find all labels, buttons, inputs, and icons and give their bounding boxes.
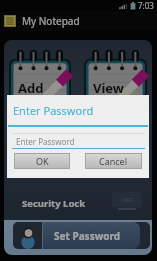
staticText: OK [36,155,49,167]
button[interactable]: View [84,46,147,104]
staticText: Enter Password [16,136,75,147]
button[interactable]: Account [13,222,42,249]
button[interactable]: Set Password [43,222,140,249]
staticText: 7:03 [138,0,154,11]
staticText: View [93,79,124,97]
staticText: My Notepad [22,14,80,28]
button[interactable]: Security lock toggle, off [112,192,142,210]
staticText: Cancel [99,155,128,167]
staticText: Enter Password [13,103,94,118]
staticText: Security Lock [22,197,86,210]
staticText: Add [18,79,44,97]
button[interactable]: Cancel [86,154,141,168]
button[interactable]: OK [15,154,69,168]
staticText: Set Password [54,229,121,243]
button[interactable]: Add [9,46,71,104]
staticText: OFF [122,196,133,204]
